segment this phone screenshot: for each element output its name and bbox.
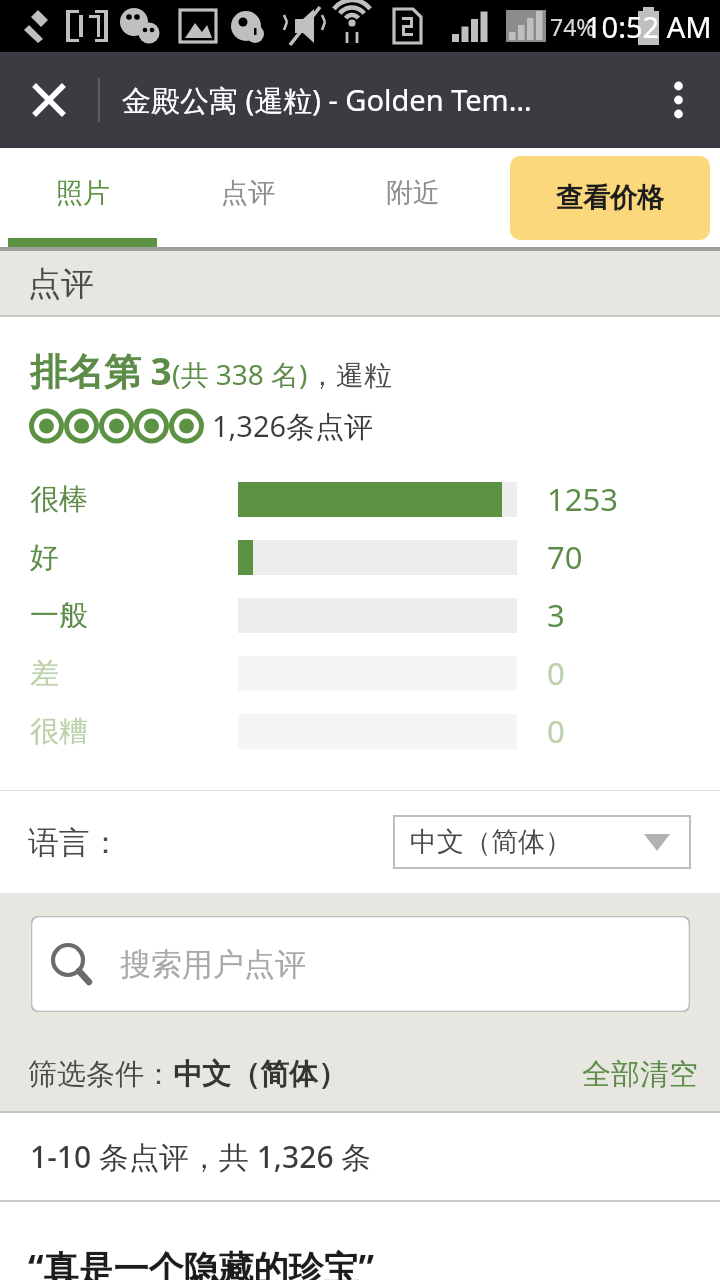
- staticText: 70: [547, 536, 583, 578]
- staticText: “真是一个隐藏的珍宝”: [28, 1244, 375, 1280]
- button[interactable]: Language selector: [394, 816, 690, 868]
- staticText: 附近: [386, 176, 440, 210]
- button[interactable]: 查看价格: [510, 156, 710, 240]
- staticText: 1-10 条点评，共 1,326 条: [30, 1136, 372, 1177]
- button[interactable]: 很糟: [0, 702, 720, 760]
- button[interactable]: 一般: [0, 586, 720, 644]
- staticText: 中文（简体）: [173, 1056, 347, 1093]
- staticText: 很糟: [30, 713, 238, 750]
- staticText: 好: [30, 539, 238, 576]
- staticText: 搜索用户点评: [120, 945, 306, 984]
- button[interactable]: 搜索用户点评: [31, 916, 690, 1012]
- staticText: 3: [547, 594, 565, 636]
- staticText: 中文（简体）: [410, 825, 572, 859]
- staticText: 照片: [56, 176, 110, 210]
- staticText: 0: [547, 652, 565, 694]
- button[interactable]: 照片: [0, 148, 165, 238]
- staticText: 点评: [28, 263, 94, 305]
- button[interactable]: 点评: [165, 148, 330, 238]
- staticText: (共 338 名): [172, 355, 308, 393]
- staticText: 1253: [547, 478, 618, 520]
- staticText: 语言：: [28, 823, 121, 862]
- staticText: 全部清空: [582, 1056, 698, 1093]
- button[interactable]: 很棒: [0, 470, 720, 528]
- staticText: 金殿公寓 (暹粒) - Golden Tem…: [122, 80, 532, 120]
- button[interactable]: Close: [14, 65, 84, 135]
- staticText: ，暹粒: [308, 358, 392, 393]
- staticText: 点评: [221, 176, 275, 210]
- staticText: 很棒: [30, 481, 238, 518]
- staticText: 10:52 AM: [585, 7, 712, 46]
- staticText: 1,326条点评: [212, 406, 374, 446]
- button[interactable]: 全部清空: [582, 1056, 698, 1093]
- staticText: 查看价格: [556, 181, 664, 215]
- staticText: 差: [30, 655, 238, 692]
- staticText: 排名第 3: [30, 345, 172, 396]
- staticText: 0: [547, 710, 565, 752]
- staticText: 筛选条件：: [28, 1056, 173, 1093]
- button[interactable]: More options: [646, 68, 710, 132]
- staticText: 一般: [30, 597, 238, 634]
- button[interactable]: 附近: [330, 148, 495, 238]
- button[interactable]: 好: [0, 528, 720, 586]
- staticText: 74%: [550, 11, 596, 42]
- button[interactable]: 差: [0, 644, 720, 702]
